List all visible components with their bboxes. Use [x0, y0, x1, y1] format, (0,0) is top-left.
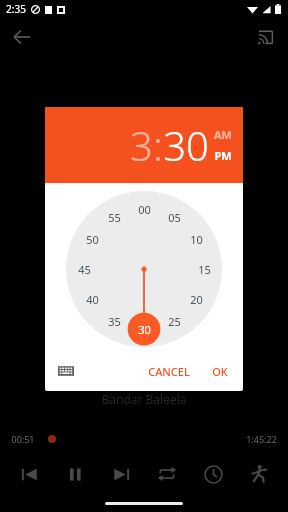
staticText: 25 [168, 314, 181, 329]
staticText: 00 [138, 202, 151, 217]
staticText: 05 [168, 210, 181, 225]
button[interactable]: Next [104, 457, 138, 491]
staticText: CANCEL [148, 364, 190, 379]
button[interactable]: Back [5, 20, 39, 54]
staticText: 50 [86, 232, 99, 247]
staticText: 55 [108, 210, 121, 225]
button[interactable]: 30 [163, 118, 209, 172]
staticText: 30 [163, 118, 209, 172]
staticText: 20 [190, 292, 203, 307]
staticText: : [153, 118, 163, 172]
staticText: 1:45:22 [246, 433, 277, 445]
staticText: 40 [86, 292, 99, 307]
button[interactable]: 3 [130, 118, 153, 172]
button[interactable]: Repeat [150, 457, 184, 491]
staticText: 2:35 [6, 2, 26, 16]
staticText: 30 [138, 322, 151, 337]
staticText: 00:51 [11, 433, 35, 445]
button[interactable]: Sleep timer [196, 457, 230, 491]
button[interactable]: OK [206, 359, 234, 384]
button[interactable]: Previous [12, 457, 46, 491]
button[interactable]: Walking mode [242, 457, 276, 491]
staticText: PM [214, 148, 232, 163]
staticText: AM [214, 127, 232, 142]
staticText: OK [212, 364, 228, 379]
button[interactable]: Seek position [48, 435, 56, 443]
button[interactable]: Cast [248, 20, 282, 54]
staticText: 3 [130, 118, 153, 172]
staticText: 35 [108, 314, 121, 329]
staticText: Bandar Baleela [101, 391, 187, 407]
staticText: 45 [78, 262, 91, 277]
staticText: 15 [198, 262, 211, 277]
button[interactable]: AM [214, 127, 232, 142]
button[interactable]: PM [214, 148, 232, 163]
button[interactable]: Pause [58, 457, 92, 491]
button[interactable]: CANCEL [142, 359, 196, 384]
button[interactable]: Minutes dial [66, 191, 222, 347]
button[interactable]: Switch to text input [53, 358, 79, 384]
staticText: 10 [190, 232, 203, 247]
